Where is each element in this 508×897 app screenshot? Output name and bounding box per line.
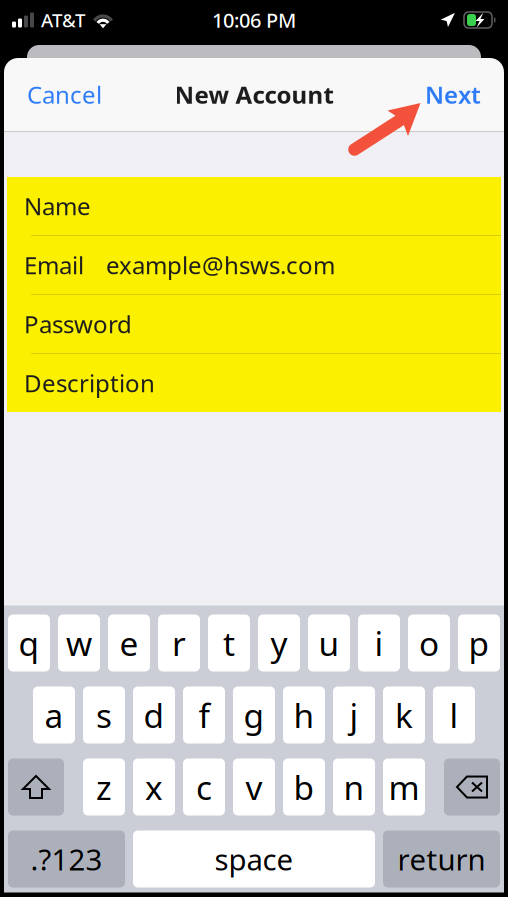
button[interactable]: Shift — [8, 758, 64, 815]
button[interactable]: m — [383, 758, 425, 815]
staticText: f — [198, 693, 209, 737]
staticText: l — [449, 693, 458, 737]
button[interactable]: r — [158, 614, 200, 671]
staticText: z — [96, 765, 112, 809]
staticText: Description — [24, 367, 155, 399]
staticText: Cancel — [27, 79, 102, 110]
button[interactable]: e — [108, 614, 150, 671]
staticText: p — [468, 621, 489, 665]
button[interactable]: t — [208, 614, 250, 671]
staticText: Name — [24, 190, 91, 222]
staticText: r — [172, 621, 186, 665]
staticText: e — [119, 621, 138, 665]
button[interactable]: h — [283, 686, 325, 743]
button[interactable]: y — [258, 614, 300, 671]
button[interactable]: l — [433, 686, 475, 743]
button[interactable]: i — [358, 614, 400, 671]
button[interactable]: w — [58, 614, 100, 671]
button[interactable]: a — [33, 686, 75, 743]
staticText: k — [395, 693, 413, 737]
staticText: return — [397, 839, 485, 878]
staticText: c — [196, 765, 212, 809]
staticText: o — [419, 621, 439, 665]
button[interactable]: v — [233, 758, 275, 815]
staticText: example@hsws.com — [106, 249, 335, 281]
staticText: New Account — [174, 79, 333, 110]
staticText: a — [44, 693, 63, 737]
staticText: 10:06 PM — [212, 7, 296, 33]
button[interactable]: o — [408, 614, 450, 671]
staticText: g — [243, 693, 264, 737]
staticText: x — [145, 765, 163, 809]
staticText: u — [318, 621, 339, 665]
staticText: space — [214, 839, 293, 878]
button[interactable]: q — [8, 614, 50, 671]
button[interactable]: .?123 — [8, 830, 125, 887]
button[interactable]: d — [133, 686, 175, 743]
button[interactable]: space — [133, 830, 375, 887]
staticText: .?123 — [30, 839, 102, 878]
button[interactable]: x — [133, 758, 175, 815]
button[interactable]: u — [308, 614, 350, 671]
button[interactable]: f — [183, 686, 225, 743]
button[interactable]: j — [333, 686, 375, 743]
staticText: j — [349, 693, 358, 737]
button[interactable]: Cancel — [17, 69, 112, 120]
button[interactable]: c — [183, 758, 225, 815]
button[interactable]: p — [458, 614, 500, 671]
staticText: s — [96, 693, 112, 737]
staticText: b — [293, 765, 314, 809]
staticText: Next — [425, 79, 481, 110]
staticText: h — [293, 693, 314, 737]
button[interactable]: n — [333, 758, 375, 815]
button[interactable]: b — [283, 758, 325, 815]
staticText: Email — [24, 249, 84, 281]
staticText: AT&T — [41, 8, 85, 32]
button[interactable]: Delete — [444, 758, 500, 815]
staticText: t — [223, 621, 235, 665]
button[interactable]: return — [383, 830, 500, 887]
staticText: n — [343, 765, 364, 809]
button[interactable]: s — [83, 686, 125, 743]
staticText: d — [143, 693, 164, 737]
button[interactable]: g — [233, 686, 275, 743]
button[interactable]: z — [83, 758, 125, 815]
staticText: v — [245, 765, 262, 809]
staticText: y — [270, 621, 287, 665]
staticText: w — [66, 621, 92, 665]
button[interactable]: k — [383, 686, 425, 743]
staticText: i — [374, 621, 383, 665]
staticText: Password — [24, 308, 132, 340]
staticText: q — [18, 621, 39, 665]
button[interactable]: Next — [415, 69, 491, 120]
staticText: m — [388, 765, 419, 809]
